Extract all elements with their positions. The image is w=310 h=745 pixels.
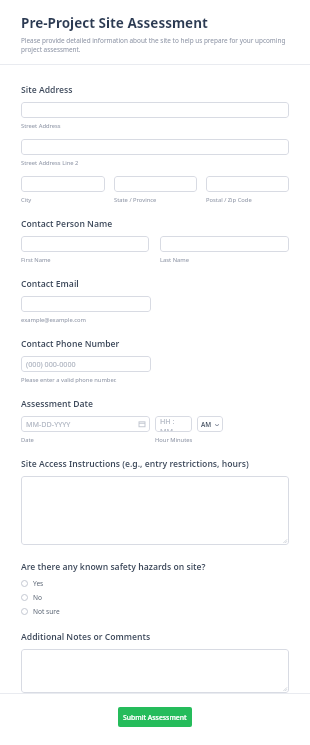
staticText: Not sure: [33, 607, 60, 616]
staticText: Are there any known safety hazards on si…: [21, 561, 206, 573]
staticText: Please provide detailed information abou…: [21, 36, 289, 54]
button[interactable]: AM: [197, 416, 223, 432]
button[interactable]: Submit Assessment: [118, 707, 192, 727]
button[interactable]: [21, 139, 289, 155]
staticText: Site Address: [21, 84, 73, 96]
staticText: Date: [21, 436, 34, 444]
button[interactable]: Yes: [21, 578, 289, 589]
button[interactable]: [206, 176, 289, 192]
staticText: Contact Person Name: [21, 218, 113, 230]
staticText: Yes: [33, 579, 44, 588]
staticText: example@example.com: [21, 316, 86, 324]
button[interactable]: [114, 176, 197, 192]
button[interactable]: (000) 000-0000: [21, 356, 151, 372]
staticText: (000) 000-0000: [26, 359, 76, 369]
staticText: HH : MM: [160, 416, 187, 432]
button[interactable]: MM-DD-YYYY: [21, 416, 150, 432]
staticText: MM-DD-YYYY: [26, 419, 71, 429]
button[interactable]: No: [21, 592, 289, 603]
button[interactable]: [21, 236, 149, 252]
staticText: Contact Phone Number: [21, 338, 120, 350]
button[interactable]: HH : MM: [155, 416, 192, 432]
staticText: Pre-Project Site Assessment: [21, 14, 208, 32]
staticText: Last Name: [160, 256, 190, 264]
staticText: Postal / Zip Code: [206, 196, 252, 204]
button[interactable]: [21, 296, 151, 312]
staticText: Contact Email: [21, 278, 79, 290]
button[interactable]: [21, 649, 289, 693]
staticText: City: [21, 196, 32, 204]
staticText: No: [33, 593, 43, 602]
button[interactable]: Not sure: [21, 606, 289, 617]
staticText: Submit Assessment: [123, 713, 187, 722]
staticText: AM: [201, 420, 212, 429]
staticText: Street Address: [21, 122, 61, 130]
staticText: Street Address Line 2: [21, 159, 79, 167]
staticText: Please enter a valid phone number.: [21, 376, 117, 384]
staticText: Assessment Date: [21, 398, 94, 410]
button[interactable]: [21, 476, 289, 545]
button[interactable]: [160, 236, 289, 252]
staticText: Site Access Instructions (e.g., entry re…: [21, 458, 249, 470]
staticText: First Name: [21, 256, 51, 264]
button[interactable]: [21, 102, 289, 118]
staticText: Additional Notes or Comments: [21, 631, 151, 643]
button[interactable]: [21, 176, 105, 192]
staticText: State / Province: [114, 196, 157, 204]
staticText: Hour Minutes: [155, 436, 193, 444]
